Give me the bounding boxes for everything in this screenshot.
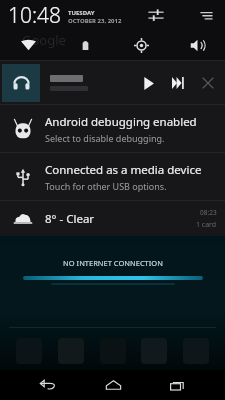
staticText: TUESDAY (68, 9, 95, 17)
button[interactable]: Settings (143, 2, 169, 28)
button[interactable]: Wi-Fi (0, 30, 57, 60)
staticText: Connected as a media device (45, 162, 202, 178)
button[interactable]: Dismiss (195, 70, 221, 96)
button[interactable]: Location (113, 30, 169, 60)
staticText: 08:23 (200, 208, 217, 217)
button[interactable]: Mobile data (57, 30, 113, 60)
staticText: 10:48 (8, 1, 62, 30)
staticText: 1 card (196, 220, 217, 230)
button[interactable]: Connected as a media device (0, 153, 225, 200)
button[interactable]: Recents (160, 370, 194, 400)
staticText: Touch for other USB options. (45, 180, 167, 192)
button[interactable]: Home (96, 370, 130, 400)
button[interactable]: Back (31, 370, 65, 400)
button[interactable]: Next track (165, 70, 191, 96)
staticText: Select to disable debugging. (45, 132, 165, 144)
button[interactable]: Play (0, 61, 225, 104)
staticText: Android debugging enabled (45, 114, 197, 130)
button[interactable]: 8° - Clear (0, 201, 225, 236)
staticText: NO INTERNET CONNECTION (63, 258, 163, 268)
button[interactable]: Android debugging enabled (0, 105, 225, 152)
staticText: Google (22, 31, 66, 49)
button[interactable]: Clear all notifications (193, 3, 217, 27)
staticText: 8° - Clear (45, 211, 196, 227)
button[interactable]: Play (135, 70, 161, 96)
button[interactable]: Volume (169, 30, 225, 60)
staticText: OCTOBER 23, 2012 (68, 17, 122, 25)
